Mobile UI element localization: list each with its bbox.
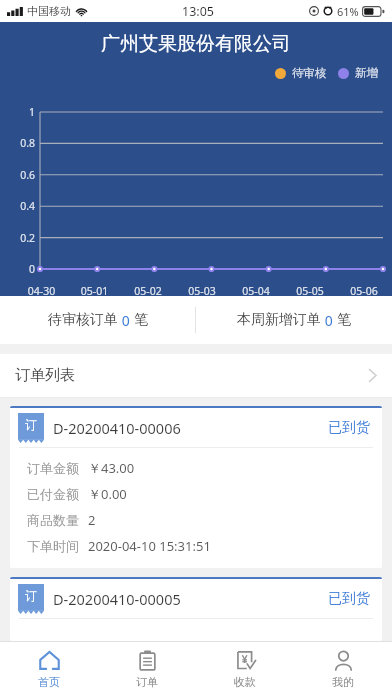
staticText: 下单时间 bbox=[27, 538, 79, 554]
staticText: 0.8 bbox=[0, 136, 35, 150]
staticText: 本周新增订单 bbox=[237, 311, 321, 329]
staticText: 笔 bbox=[134, 311, 148, 329]
staticText: 05-04 bbox=[229, 284, 283, 298]
staticText: 收款 bbox=[234, 675, 256, 689]
staticText: 05-06 bbox=[337, 284, 391, 298]
button[interactable]: 收款 bbox=[196, 642, 294, 696]
staticText: D-20200410-00005 bbox=[53, 589, 181, 609]
staticText: 0.4 bbox=[0, 199, 35, 213]
staticText: 05-02 bbox=[121, 284, 175, 298]
button[interactable]: 订 bbox=[10, 406, 382, 568]
staticText: 待审核订单 bbox=[48, 311, 118, 329]
staticText: 笔 bbox=[337, 311, 351, 329]
button[interactable]: 待审核订单 bbox=[0, 296, 195, 344]
button[interactable]: 订单 bbox=[98, 642, 196, 696]
staticText: 1 bbox=[0, 105, 35, 119]
staticText: ￥43.00 bbox=[88, 459, 135, 477]
staticText: 订单金额 bbox=[27, 460, 79, 476]
staticText: 0 bbox=[321, 311, 337, 330]
staticText: 我的 bbox=[332, 675, 354, 689]
staticText: 61% bbox=[337, 4, 359, 19]
staticText: 0 bbox=[118, 311, 134, 330]
staticText: 新增 bbox=[355, 66, 378, 80]
staticText: 商品数量 bbox=[27, 512, 79, 528]
button[interactable]: 订单列表 bbox=[0, 354, 392, 397]
staticText: 中国移动 bbox=[27, 4, 71, 18]
staticText: 05-01 bbox=[68, 284, 121, 298]
button[interactable]: 我的 bbox=[294, 642, 392, 696]
staticText: 05-03 bbox=[175, 284, 229, 298]
staticText: 0.6 bbox=[0, 168, 35, 182]
staticText: 已到货 bbox=[328, 590, 370, 608]
staticText: 2 bbox=[88, 511, 96, 529]
button[interactable]: 首页 bbox=[0, 642, 98, 696]
staticText: 订单列表 bbox=[15, 366, 75, 385]
button[interactable]: 订 bbox=[10, 577, 382, 641]
staticText: D-20200410-00006 bbox=[53, 418, 181, 438]
staticText: 已到货 bbox=[328, 419, 370, 437]
staticText: 已付金额 bbox=[27, 486, 79, 502]
staticText: 广州艾果股份有限公司 bbox=[0, 32, 392, 56]
staticText: 0.2 bbox=[0, 231, 35, 245]
staticText: 13:05 bbox=[182, 3, 214, 20]
staticText: ￥0.00 bbox=[88, 485, 127, 503]
staticText: 05-05 bbox=[283, 284, 337, 298]
button[interactable]: 本周新增订单 bbox=[196, 296, 392, 344]
staticText: 首页 bbox=[38, 675, 60, 689]
staticText: 待审核 bbox=[292, 66, 327, 80]
staticText: 订 bbox=[25, 417, 37, 432]
staticText: 订单 bbox=[136, 675, 158, 689]
staticText: 订 bbox=[25, 588, 37, 603]
staticText: 04-30 bbox=[15, 284, 68, 298]
staticText: 0 bbox=[0, 262, 35, 276]
staticText: 2020-04-10 15:31:51 bbox=[88, 537, 211, 555]
